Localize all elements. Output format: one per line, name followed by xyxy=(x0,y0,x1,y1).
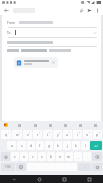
button[interactable]: d xyxy=(27,141,35,150)
button[interactable]: Google xyxy=(0,121,11,129)
button[interactable] xyxy=(2,38,101,46)
staticText: 3 xyxy=(29,131,31,134)
staticText: t xyxy=(47,132,49,137)
staticText: s xyxy=(21,143,23,148)
button[interactable]: o xyxy=(83,130,92,139)
button[interactable]: t xyxy=(43,130,52,139)
staticText: l xyxy=(85,143,86,148)
staticText: p xyxy=(96,132,99,137)
button[interactable]: e xyxy=(23,130,32,139)
button[interactable]: Enter xyxy=(90,141,102,150)
staticText: n xyxy=(59,154,62,159)
staticText: To xyxy=(7,31,11,35)
button[interactable]: r xyxy=(33,130,42,139)
button[interactable]: z xyxy=(11,152,19,161)
staticText: d xyxy=(30,143,33,148)
staticText: z xyxy=(14,154,16,159)
button[interactable]: l xyxy=(81,141,89,150)
button[interactable]: From xyxy=(2,18,101,27)
staticText: c xyxy=(32,154,34,159)
button[interactable]: v xyxy=(38,152,46,161)
staticText: 7 xyxy=(69,131,71,134)
button[interactable]: j xyxy=(63,141,71,150)
staticText: h xyxy=(57,143,60,148)
staticText: 8 xyxy=(79,131,81,134)
button[interactable]: y xyxy=(53,130,62,139)
button[interactable]: Symbols xyxy=(1,163,15,171)
button[interactable]: s xyxy=(17,141,26,150)
button[interactable]: n xyxy=(56,152,64,161)
button[interactable]: p xyxy=(93,130,102,139)
button[interactable]: Back xyxy=(2,6,10,14)
staticText: g xyxy=(48,143,51,148)
button[interactable]: To xyxy=(2,28,101,37)
button[interactable]: Shift xyxy=(1,152,10,161)
button[interactable]: Keyboard tool xyxy=(58,121,73,129)
button[interactable]: Send xyxy=(85,6,93,14)
button[interactable]: Remove attachment xyxy=(14,57,58,68)
staticText: . xyxy=(84,165,85,169)
button[interactable]: i xyxy=(73,130,82,139)
button[interactable]: k xyxy=(72,141,80,150)
staticText: e xyxy=(27,132,29,137)
staticText: , xyxy=(78,154,79,159)
staticText: . xyxy=(87,154,88,159)
button[interactable]: x xyxy=(20,152,28,161)
button[interactable]: w xyxy=(12,130,22,139)
staticText: 1 xyxy=(8,131,10,134)
button[interactable]: Language xyxy=(92,163,102,171)
staticText: v xyxy=(41,154,43,159)
button[interactable]: a xyxy=(7,141,16,150)
button[interactable]: Recents xyxy=(60,175,68,183)
button[interactable]: u xyxy=(63,130,72,139)
staticText: o xyxy=(86,132,89,137)
button[interactable]: Keyboard tool xyxy=(43,121,58,129)
staticText: x xyxy=(23,154,25,159)
staticText: w xyxy=(16,132,19,137)
staticText: 4 xyxy=(39,131,41,134)
button[interactable]: , xyxy=(74,152,82,161)
staticText: 9 xyxy=(89,131,91,134)
button[interactable]: Emoji xyxy=(16,163,26,171)
button[interactable]: Back xyxy=(10,175,18,183)
button[interactable]: Attach file xyxy=(77,6,85,14)
staticText: a xyxy=(11,143,13,148)
button[interactable]: b xyxy=(47,152,55,161)
button[interactable]: m xyxy=(65,152,73,161)
staticText: m xyxy=(67,154,71,159)
button[interactable]: Keyboard tool xyxy=(11,121,27,129)
staticText: k xyxy=(75,143,77,148)
staticText: y xyxy=(57,132,59,137)
button[interactable]: Keyboard tool xyxy=(88,121,103,129)
button[interactable]: c xyxy=(29,152,37,161)
staticText: ?123 xyxy=(5,165,11,169)
staticText: 5 xyxy=(49,131,51,134)
button[interactable] xyxy=(2,47,101,54)
button[interactable]: Home xyxy=(35,175,43,183)
staticText: r xyxy=(37,132,39,137)
staticText: b xyxy=(50,154,53,159)
button[interactable]: Screenshot xyxy=(85,175,93,183)
button[interactable]: Remove attachment xyxy=(51,60,56,65)
staticText: i xyxy=(77,132,78,137)
staticText: u xyxy=(66,132,69,137)
staticText: j xyxy=(67,143,68,148)
button[interactable]: Backspace xyxy=(92,152,102,161)
staticText: From xyxy=(7,21,15,25)
button[interactable]: More options xyxy=(93,6,101,14)
staticText: f xyxy=(39,143,41,148)
button[interactable]: g xyxy=(45,141,53,150)
button[interactable]: f xyxy=(36,141,44,150)
button[interactable]: q xyxy=(1,130,11,139)
staticText: 0 xyxy=(99,131,101,134)
button[interactable]: Keyboard tool xyxy=(73,121,88,129)
staticText: q xyxy=(5,132,8,137)
button[interactable]: h xyxy=(54,141,62,150)
staticText: 2 xyxy=(19,131,21,134)
staticText: 6 xyxy=(59,131,61,134)
button[interactable]: Keyboard tool xyxy=(27,121,43,129)
